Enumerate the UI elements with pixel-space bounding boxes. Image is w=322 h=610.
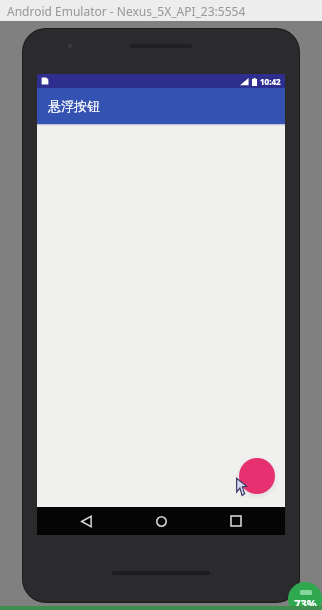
staticText: Android Emulator - Nexus_5X_API_23:5554 — [7, 3, 246, 19]
button[interactable]: Battery 73 percent — [288, 582, 322, 610]
button[interactable]: Back — [60, 507, 112, 535]
button[interactable]: Recent apps — [210, 507, 262, 535]
button[interactable]: 悬浮按钮 — [239, 458, 275, 494]
button[interactable]: Home — [135, 507, 187, 535]
staticText: 10:42 — [260, 76, 281, 87]
staticText: 悬浮按钮 — [48, 98, 100, 114]
staticText: 73% — [294, 596, 317, 610]
